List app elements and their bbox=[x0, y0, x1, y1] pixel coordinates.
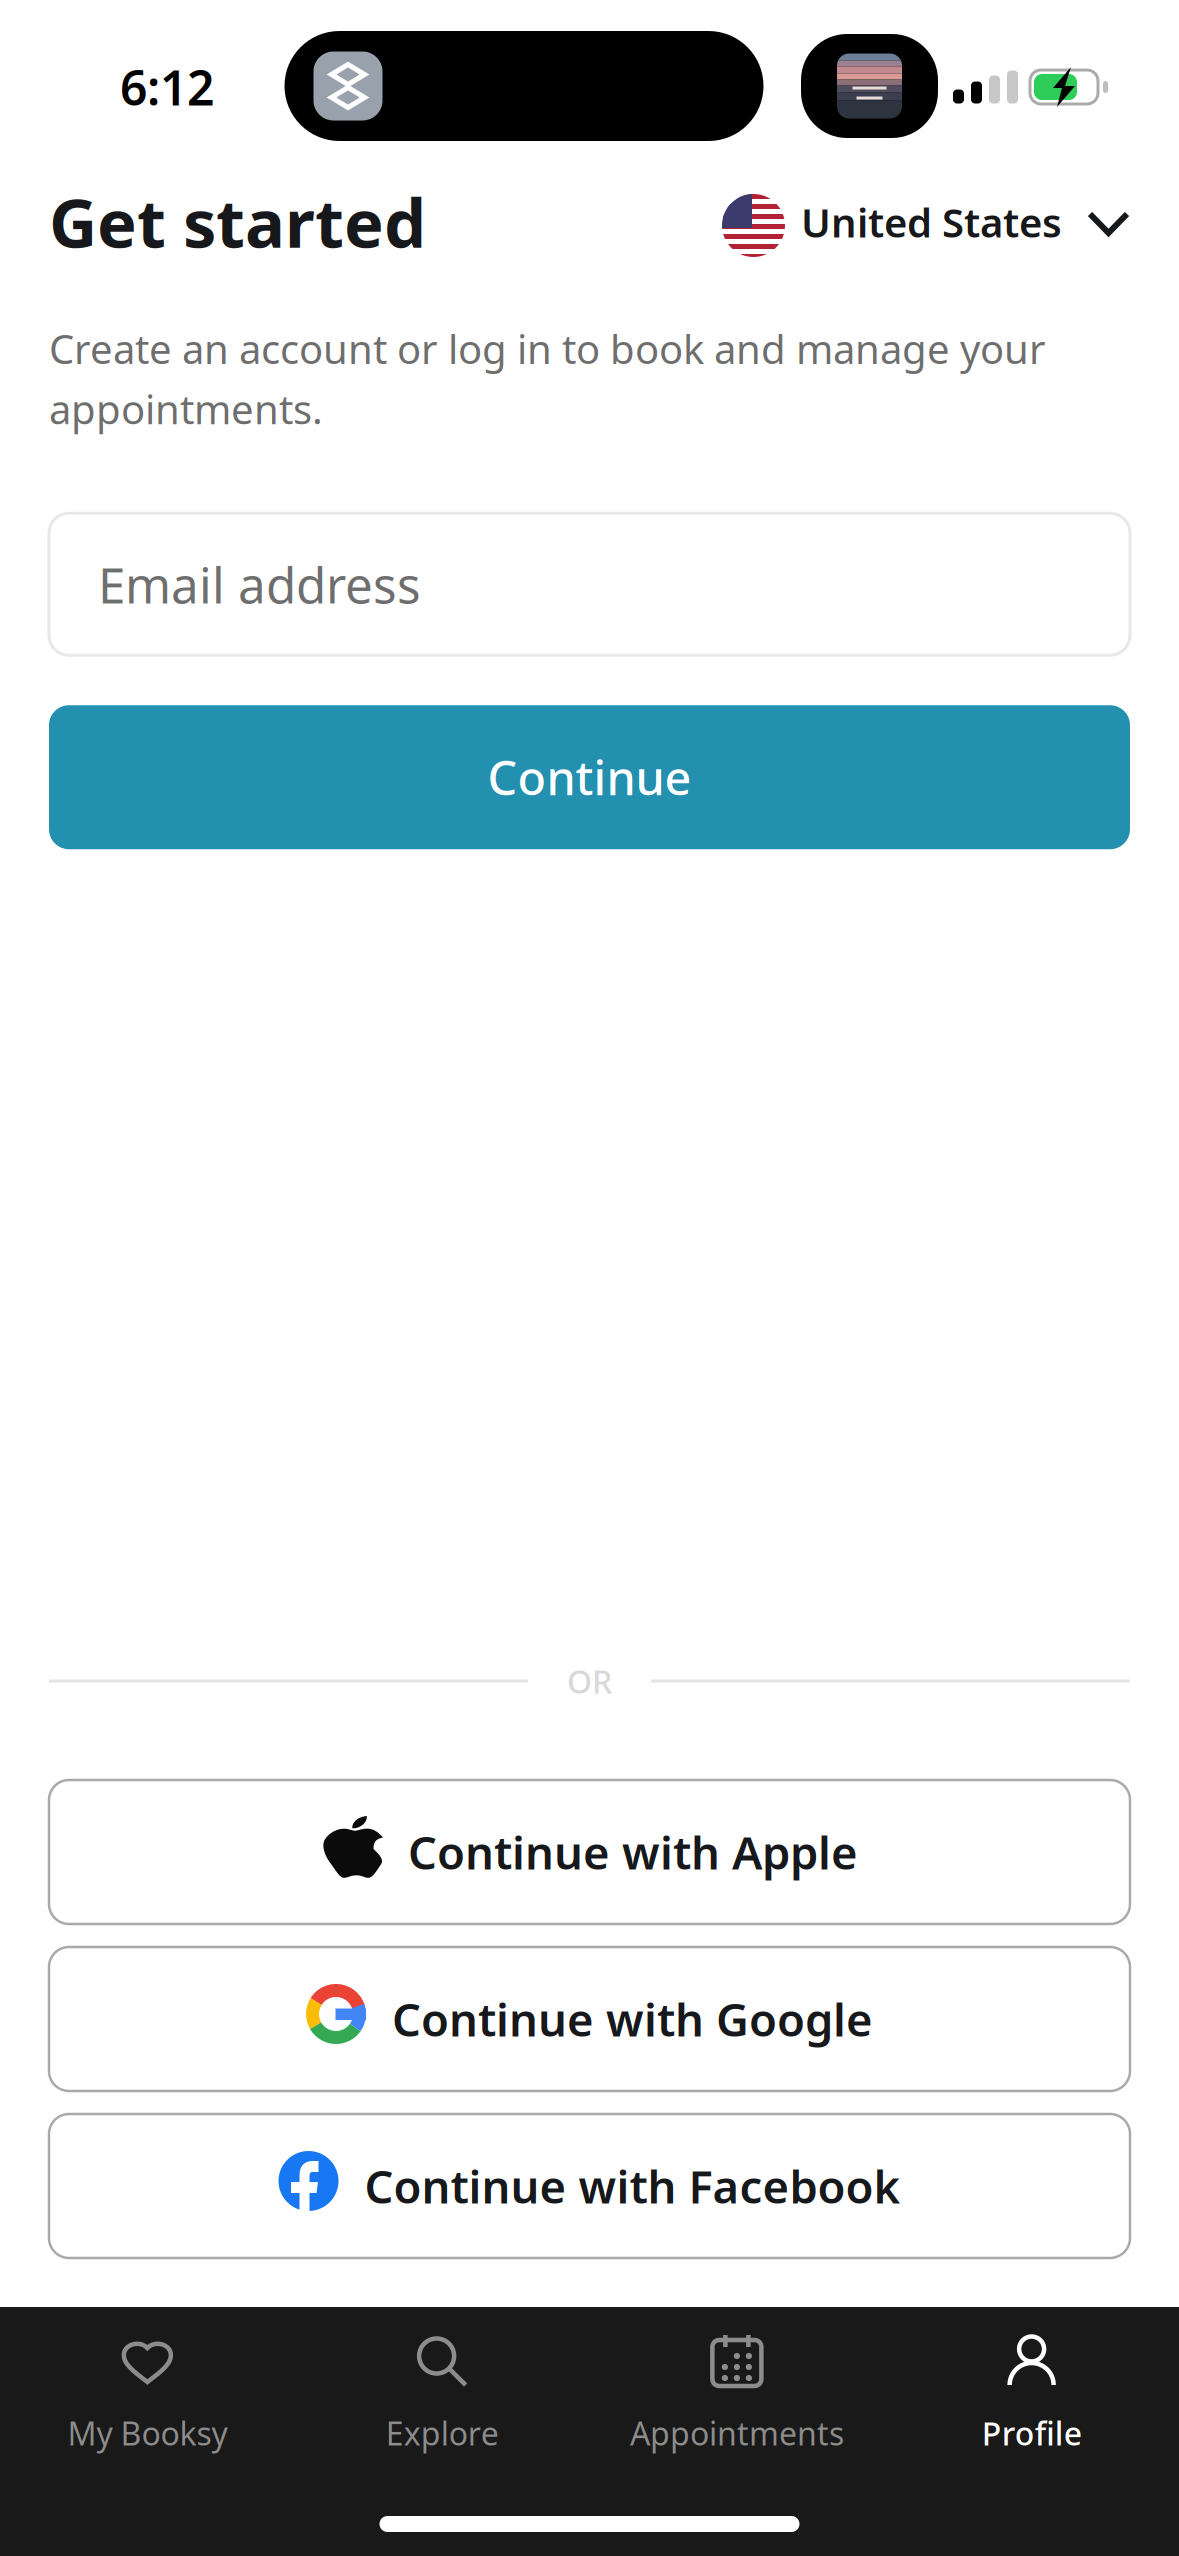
button[interactable]: Continue bbox=[49, 705, 1130, 849]
staticText: Profile bbox=[982, 2412, 1082, 2454]
staticText: Get started bbox=[49, 178, 426, 266]
button[interactable]: Profile bbox=[884, 2334, 1179, 2454]
button[interactable]: My Booksy bbox=[0, 2334, 295, 2454]
staticText: Continue with Facebook bbox=[364, 2156, 900, 2216]
staticText: United States bbox=[801, 195, 1062, 248]
staticText: Continue bbox=[487, 746, 691, 808]
staticText: Appointments bbox=[630, 2412, 844, 2454]
button[interactable]: Explore bbox=[295, 2334, 590, 2454]
button[interactable]: Continue with Apple bbox=[49, 1780, 1130, 1924]
staticText: appointments. bbox=[49, 382, 323, 435]
staticText: 6:12 bbox=[120, 55, 214, 119]
staticText: OR bbox=[567, 1660, 612, 1702]
staticText: Continue with Google bbox=[392, 1989, 873, 2049]
staticText: Continue with Apple bbox=[408, 1822, 858, 1882]
button[interactable]: Appointments bbox=[589, 2334, 884, 2454]
button[interactable]: Email address bbox=[49, 513, 1130, 655]
staticText: Create an account or log in to book and … bbox=[49, 322, 1046, 375]
staticText: My Booksy bbox=[67, 2412, 227, 2454]
staticText: Explore bbox=[386, 2412, 499, 2454]
staticText: Email address bbox=[98, 551, 421, 617]
button[interactable]: United States bbox=[722, 178, 1130, 266]
button[interactable]: Continue with Google bbox=[49, 1947, 1130, 2091]
button[interactable]: Continue with Facebook bbox=[49, 2114, 1130, 2258]
